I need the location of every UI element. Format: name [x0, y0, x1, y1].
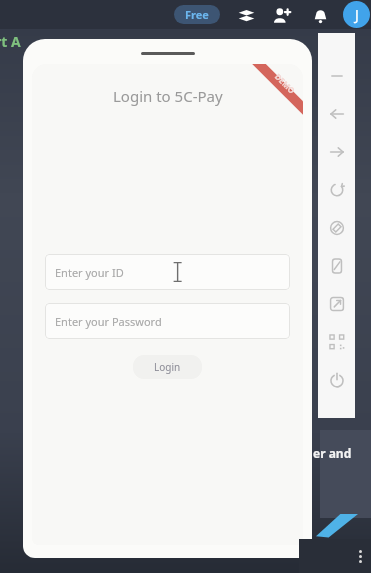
- staticText: J: [355, 5, 359, 24]
- button[interactable]: Minimize: [318, 57, 355, 95]
- staticText: rt A: [0, 32, 21, 51]
- staticText: Login to 5C-Pay: [113, 86, 223, 106]
- button[interactable]: QR code: [318, 323, 355, 361]
- staticText: er and: [313, 445, 352, 461]
- staticText: DEMO: [273, 71, 298, 96]
- staticText: Free: [185, 7, 209, 22]
- button[interactable]: Forward: [318, 133, 355, 171]
- button[interactable]: Layers: [235, 4, 257, 26]
- button[interactable]: Notifications: [309, 4, 331, 26]
- button[interactable]: Open in new window: [318, 285, 355, 323]
- staticText: Login: [154, 360, 181, 374]
- button[interactable]: Add person: [270, 4, 292, 26]
- button[interactable]: Back: [318, 95, 355, 133]
- button[interactable]: Enter your Password: [45, 303, 290, 339]
- button[interactable]: Power: [318, 361, 355, 399]
- button[interactable]: Rotation lock: [318, 209, 355, 247]
- button[interactable]: Screenshot: [318, 247, 355, 285]
- staticText: Enter your Password: [55, 314, 162, 329]
- button[interactable]: Refresh: [318, 171, 355, 209]
- staticText: Enter your ID: [55, 265, 124, 280]
- button[interactable]: Login: [133, 355, 202, 379]
- button[interactable]: Free: [174, 5, 220, 24]
- button[interactable]: Profile: [343, 1, 370, 28]
- button[interactable]: Enter your ID: [45, 254, 290, 290]
- button[interactable]: More options: [359, 550, 362, 563]
